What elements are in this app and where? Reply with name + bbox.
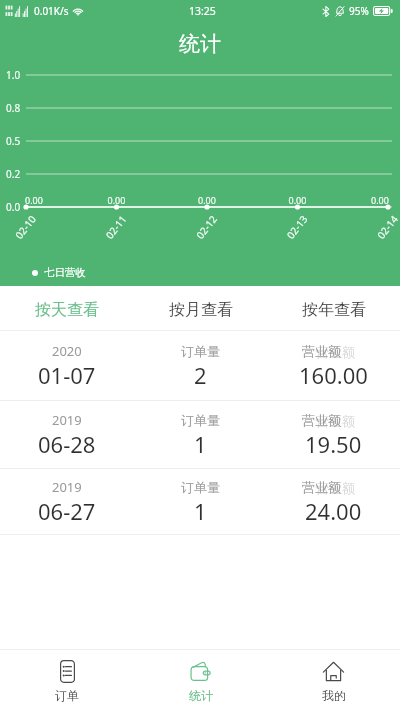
staticText: 0.01K/s (34, 4, 69, 18)
staticText: 统计 (189, 688, 213, 703)
button[interactable]: 我的 (267, 650, 400, 711)
staticText: 06-27 (38, 496, 96, 526)
staticText: 统计 (179, 31, 221, 57)
button[interactable]: 按月查看 (134, 286, 267, 330)
staticText: 订单量 (181, 479, 220, 495)
staticText: 营业额 (302, 343, 341, 359)
staticText: 营业额 (316, 480, 355, 496)
staticText: 订单量 (181, 412, 220, 428)
staticText: 19.50 (305, 429, 362, 459)
staticText: 13:25 (189, 4, 216, 18)
staticText: 我的 (322, 688, 346, 703)
staticText: 2020 (52, 342, 82, 360)
staticText: 2019 (52, 478, 82, 496)
button[interactable]: 按年查看 (267, 286, 400, 330)
staticText: 按天查看 (35, 300, 99, 320)
staticText: 06-28 (38, 429, 96, 459)
staticText: 160.00 (299, 360, 368, 390)
staticText: 按年查看 (302, 300, 366, 320)
staticText: 订单 (55, 688, 79, 703)
staticText: 2 (194, 360, 207, 390)
button[interactable]: 统计 (134, 650, 267, 711)
staticText: 营业额 (302, 412, 341, 428)
button[interactable]: 2020 (0, 331, 400, 401)
staticText: 95% (349, 4, 369, 18)
button[interactable]: 2019 (0, 401, 400, 469)
staticText: 1 (194, 429, 207, 459)
staticText: 营业额 (316, 344, 355, 360)
staticText: 营业额 (302, 479, 341, 495)
staticText: 2019 (52, 411, 82, 429)
staticText: 订单量 (181, 343, 220, 359)
staticText: 24.00 (305, 496, 362, 526)
staticText: 01-07 (38, 360, 96, 390)
staticText: 七日营收 (44, 266, 86, 279)
button[interactable]: 2019 (0, 469, 400, 535)
button[interactable]: 订单 (0, 650, 134, 711)
staticText: 营业额 (316, 413, 355, 429)
staticText: 1 (194, 496, 207, 526)
staticText: 按月查看 (169, 300, 233, 320)
button[interactable]: 按天查看 (0, 286, 134, 330)
